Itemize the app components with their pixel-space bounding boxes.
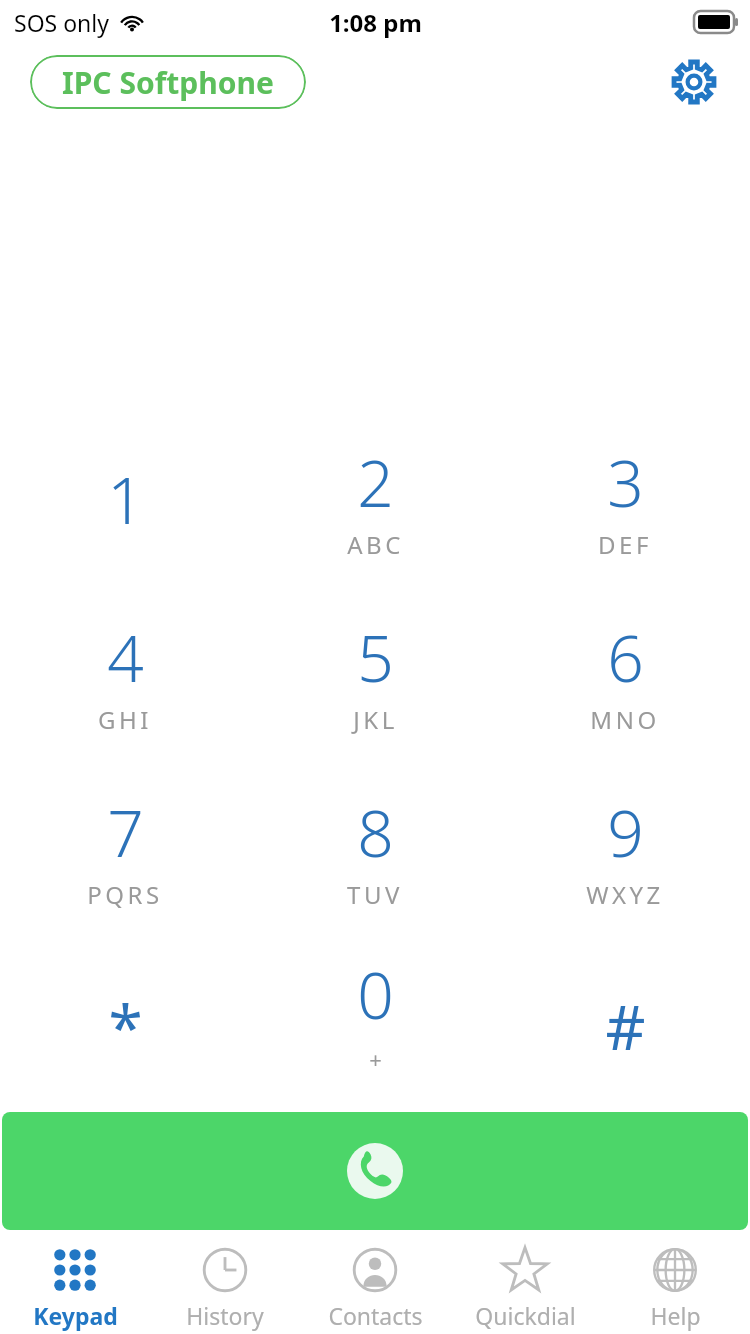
staticText: + [369,1044,382,1074]
staticText: * [108,984,143,1068]
button[interactable]: History [150,1230,300,1334]
staticText: 8 [357,789,394,876]
staticText: SOS only [14,7,109,38]
staticText: JKL [353,703,398,736]
staticText: 6 [607,614,644,701]
staticText: WXYZ [586,878,664,911]
staticText: 0 [357,951,394,1038]
staticText: 3 [607,439,644,526]
button[interactable]: Settings [668,56,720,108]
staticText: Help [650,1300,701,1331]
button[interactable]: Call [2,1112,748,1230]
button[interactable]: 8 [250,770,500,945]
button[interactable]: # [500,945,750,1095]
button[interactable]: Keypad [0,1230,150,1334]
button[interactable]: Contacts [300,1230,450,1334]
staticText: ABC [347,528,404,561]
button[interactable]: IPC Softphone [30,55,306,109]
staticText: IPC Softphone [62,62,274,103]
button[interactable]: 3 [500,420,750,595]
staticText: TUV [347,878,403,911]
button[interactable]: 2 [250,420,500,595]
button[interactable]: 9 [500,770,750,945]
staticText: 1 [107,456,144,543]
staticText: 5 [357,614,394,701]
staticText: GHI [98,703,152,736]
button[interactable]: 1 [0,420,250,595]
staticText: Keypad [33,1300,118,1331]
button[interactable]: Help [600,1230,750,1334]
staticText: 2 [357,439,394,526]
staticText: Contacts [328,1300,423,1331]
staticText: DEF [598,528,652,561]
button[interactable]: 0 [250,945,500,1095]
staticText: # [605,984,646,1068]
staticText: 7 [107,789,144,876]
staticText: History [186,1300,264,1331]
button[interactable]: 7 [0,770,250,945]
staticText: 4 [107,614,144,701]
staticText: 9 [607,789,644,876]
staticText: 1:08 pm [329,6,422,39]
button[interactable]: 6 [500,595,750,770]
button[interactable]: 4 [0,595,250,770]
staticText: Quickdial [475,1300,576,1331]
staticText: MNO [590,703,660,736]
button[interactable]: 5 [250,595,500,770]
button[interactable]: Quickdial [450,1230,600,1334]
button[interactable]: * [0,945,250,1095]
staticText: PQRS [87,878,163,911]
